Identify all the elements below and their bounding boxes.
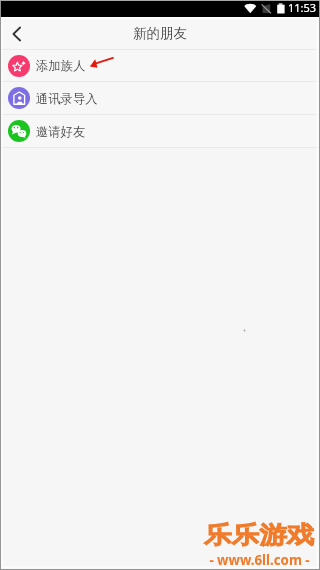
staticText: - www.6ll.com - bbox=[209, 551, 310, 569]
staticText: 新的朋友 bbox=[133, 25, 187, 42]
staticText: 添加族人 bbox=[36, 58, 86, 73]
staticText: 邀请好友 bbox=[36, 124, 86, 139]
staticText: 通讯录导入 bbox=[36, 91, 98, 106]
staticText: 11:53 bbox=[288, 0, 317, 15]
button[interactable]: 添加族人 bbox=[0, 50, 320, 82]
staticText: 乐乐游戏 bbox=[204, 520, 315, 550]
button[interactable]: 邀请好友 bbox=[0, 115, 320, 148]
button[interactable]: 通讯录导入 bbox=[0, 82, 320, 115]
button[interactable]: Back bbox=[0, 17, 34, 50]
